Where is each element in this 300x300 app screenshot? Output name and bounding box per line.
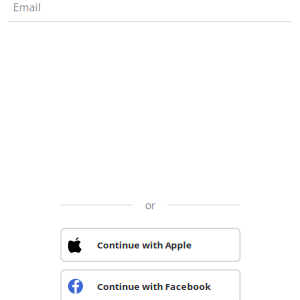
staticText: Continue with Facebook <box>97 280 211 292</box>
staticText: Email <box>13 0 41 14</box>
button[interactable]: Continue with Apple <box>61 228 240 261</box>
staticText: Continue with Apple <box>97 239 192 251</box>
staticText: or <box>145 198 155 212</box>
button[interactable]: Email <box>0 0 300 22</box>
button[interactable]: Continue with Facebook <box>61 270 240 300</box>
